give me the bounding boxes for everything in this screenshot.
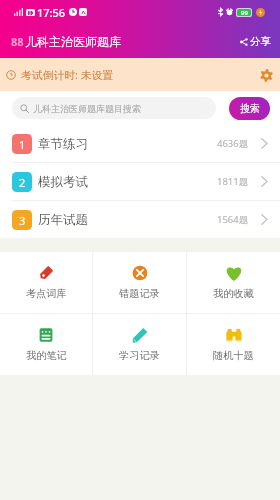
staticText: 历年试题 [38,212,88,228]
staticText: 我的笔记 [26,349,67,362]
button[interactable]: 我的收藏 [187,252,280,313]
button[interactable]: 分享 [236,30,275,53]
staticText: 17:56 [37,5,66,20]
staticText: 考点词库 [26,287,67,300]
button[interactable]: 学习记录 [93,314,186,375]
staticText: 我的收藏 [213,287,254,300]
staticText: 搜索 [240,102,260,115]
staticText: 考试倒计时: 未设置 [21,67,114,82]
staticText: 4636题 [217,137,249,150]
button[interactable]: 1 [0,125,280,162]
staticText: 随机十题 [213,349,254,362]
button[interactable]: 随机十题 [187,314,280,375]
staticText: 儿科主治医师题库题目搜索 [33,103,141,114]
staticText: 2 [19,175,26,190]
staticText: 模拟考试 [38,174,88,190]
button[interactable]: 设置倒计时 [254,63,278,87]
button[interactable]: 考点词库 [0,252,92,313]
staticText: 学习记录 [119,349,160,362]
button[interactable]: 3 [0,201,280,238]
staticText: 1564题 [217,213,249,226]
staticText: 分享 [250,35,271,48]
staticText: 儿科主治医师题库 [25,34,121,49]
staticText: 99 [241,9,248,16]
staticText: 3 [19,213,26,228]
button[interactable]: 我的笔记 [0,314,92,375]
button[interactable]: 搜索 [229,97,270,120]
button[interactable]: 儿科主治医师题库题目搜索 [12,97,216,119]
button[interactable]: 2 [0,163,280,200]
staticText: 章节练习 [38,136,88,152]
staticText: 错题记录 [119,287,160,300]
staticText: 1811题 [217,175,249,188]
staticText: 88 [11,34,24,49]
button[interactable]: 错题记录 [93,252,186,313]
staticText: 1 [19,137,26,152]
